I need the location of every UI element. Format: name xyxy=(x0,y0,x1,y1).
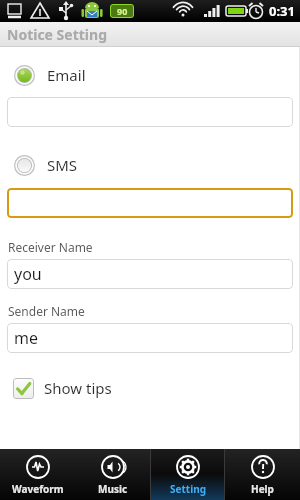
staticText: you xyxy=(14,263,42,285)
staticText: Music xyxy=(98,482,128,496)
staticText: 0:31 xyxy=(269,2,295,20)
other: Setting xyxy=(176,455,200,479)
staticText: Show tips xyxy=(44,378,112,398)
button[interactable] xyxy=(7,188,293,218)
staticText: Waveform xyxy=(12,482,64,496)
button[interactable]: Show tips xyxy=(0,373,300,403)
button[interactable]: Help xyxy=(225,449,300,500)
button[interactable]: Email xyxy=(0,60,300,90)
staticText: SMS xyxy=(47,155,78,175)
other: Waveform xyxy=(26,455,50,479)
staticText: Setting xyxy=(170,482,206,496)
button[interactable]: SMS xyxy=(0,150,300,180)
staticText: Notice Setting xyxy=(7,25,107,44)
button[interactable]: Music xyxy=(75,449,150,500)
staticText: Email xyxy=(47,65,86,85)
button[interactable]: you xyxy=(7,259,293,289)
staticText: me xyxy=(14,327,38,349)
staticText: 90 xyxy=(117,5,128,17)
button[interactable]: Waveform xyxy=(0,449,75,500)
button[interactable] xyxy=(7,97,293,127)
button[interactable]: Setting xyxy=(150,449,225,500)
staticText: Sender Name xyxy=(8,303,85,319)
staticText: Receiver Name xyxy=(8,239,93,255)
other: Help xyxy=(251,455,275,479)
button[interactable]: me xyxy=(7,323,293,353)
other: Music xyxy=(101,455,125,479)
staticText: Help xyxy=(251,482,274,496)
